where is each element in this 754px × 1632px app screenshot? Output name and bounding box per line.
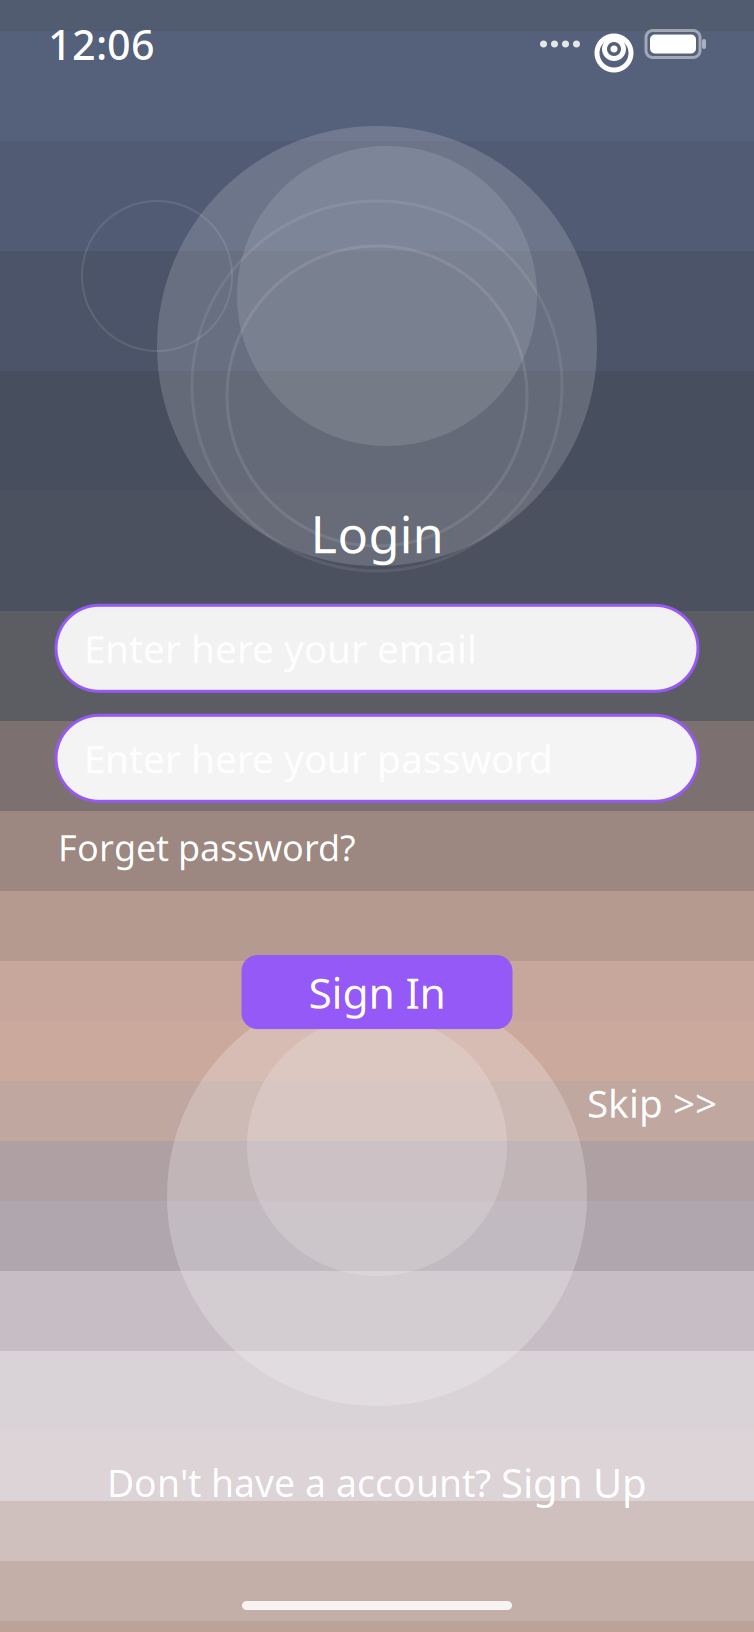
- staticText: 12:06: [48, 17, 155, 71]
- staticText: Don't have a account?: [107, 1458, 491, 1507]
- staticText: Sign In: [308, 964, 445, 1020]
- button[interactable]: Don't have a account?: [107, 1456, 647, 1509]
- button[interactable]: Enter here your password: [56, 715, 698, 801]
- button[interactable]: Enter here your email: [56, 605, 698, 691]
- staticText: Login: [310, 500, 443, 567]
- button[interactable]: Skip >>: [587, 1073, 717, 1132]
- button[interactable]: Forget password?: [58, 819, 356, 875]
- button[interactable]: Sign In: [241, 955, 512, 1029]
- staticText: Enter here your password: [84, 733, 553, 784]
- staticText: Skip >>: [587, 1077, 717, 1128]
- staticText: Forget password?: [58, 823, 356, 871]
- staticText: Sign Up: [501, 1456, 647, 1509]
- staticText: Enter here your email: [84, 623, 477, 674]
